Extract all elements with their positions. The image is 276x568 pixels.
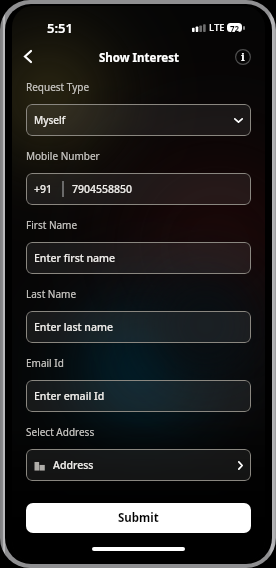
button[interactable]: Select Address [26,449,251,481]
staticText: Show Interest [99,50,179,66]
staticText: Address [53,458,94,472]
staticText: Submit [118,510,159,526]
button[interactable]: Mobile Number [26,173,251,205]
button[interactable]: Information [232,46,254,67]
button[interactable]: Submit [26,503,251,533]
staticText: Enter email Id [34,389,105,403]
staticText: 72 [230,23,240,32]
staticText: 5:51 [47,19,73,35]
staticText: Myself [34,113,66,127]
button[interactable]: Request Type [26,104,251,136]
staticText: i [241,49,245,64]
staticText: Enter first name [34,251,116,265]
button[interactable]: First Name [26,242,251,274]
staticText: First Name [26,218,78,232]
staticText: Last Name [26,287,77,301]
button[interactable]: Email Id [26,380,251,412]
button[interactable]: Last Name [26,311,251,343]
button[interactable]: Back [17,46,39,67]
staticText: LTE [209,21,225,34]
staticText: Request Type [26,80,90,94]
staticText: Select Address [26,425,95,439]
staticText: Mobile Number [26,149,100,163]
staticText: Email Id [26,356,64,370]
staticText: +91 [34,182,53,196]
staticText: 7904558850 [72,182,133,196]
staticText: Enter last name [34,320,113,334]
